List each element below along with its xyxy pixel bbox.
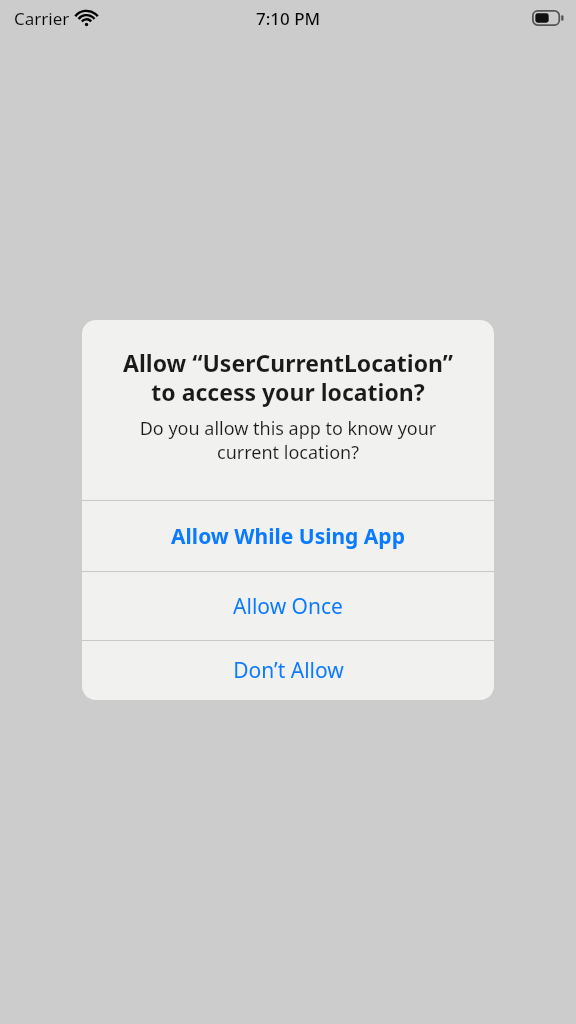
button[interactable]: Allow Once — [82, 572, 494, 640]
staticText: Allow “UserCurrentLocation” to access yo… — [92, 347, 484, 408]
button[interactable]: Don’t Allow — [82, 641, 494, 700]
staticText: Don’t Allow — [233, 656, 344, 685]
other: Battery — [532, 10, 564, 26]
staticText: Allow While Using App — [171, 522, 405, 551]
other: Wi-Fi signal — [77, 11, 96, 26]
button[interactable]: Allow While Using App — [82, 501, 494, 571]
staticText: Do you allow this app to know your curre… — [96, 416, 480, 464]
staticText: Carrier — [14, 7, 70, 30]
staticText: 7:10 PM — [256, 7, 321, 30]
staticText: Allow Once — [233, 592, 343, 621]
